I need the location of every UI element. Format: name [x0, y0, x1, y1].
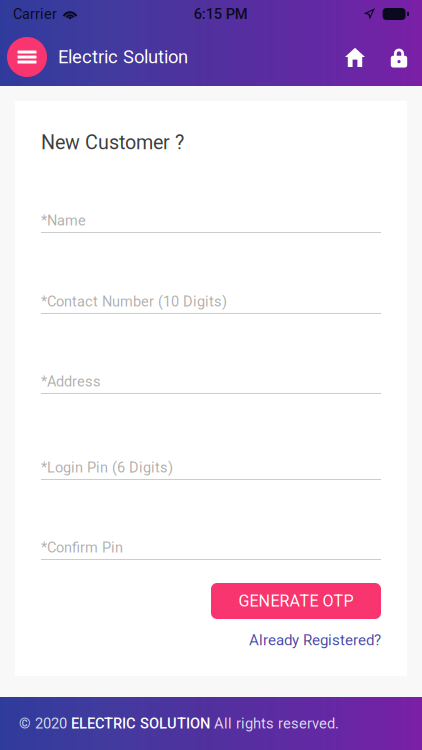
staticText: All rights reserved.: [210, 715, 339, 732]
staticText: *Address: [41, 373, 101, 390]
staticText: © 2020: [19, 715, 71, 732]
staticText: *Login Pin (6 Digits): [41, 459, 173, 476]
button[interactable]: Menu: [7, 37, 47, 77]
staticText: Carrier: [13, 6, 57, 22]
button[interactable]: Login: [381, 33, 417, 81]
button[interactable]: Home: [333, 33, 377, 81]
staticText: 6:15 PM: [194, 5, 248, 23]
button[interactable]: Already Registered?: [247, 631, 381, 649]
staticText: Electric Solution: [58, 46, 188, 68]
staticText: New Customer ?: [41, 131, 184, 154]
staticText: ELECTRIC SOLUTION: [71, 715, 210, 732]
staticText: *Contact Number (10 Digits): [41, 293, 227, 310]
staticText: Already Registered?: [249, 631, 381, 649]
staticText: GENERATE OTP: [238, 591, 353, 610]
button[interactable]: GENERATE OTP: [211, 583, 381, 619]
staticText: *Confirm Pin: [41, 539, 123, 556]
staticText: *Name: [41, 212, 86, 229]
